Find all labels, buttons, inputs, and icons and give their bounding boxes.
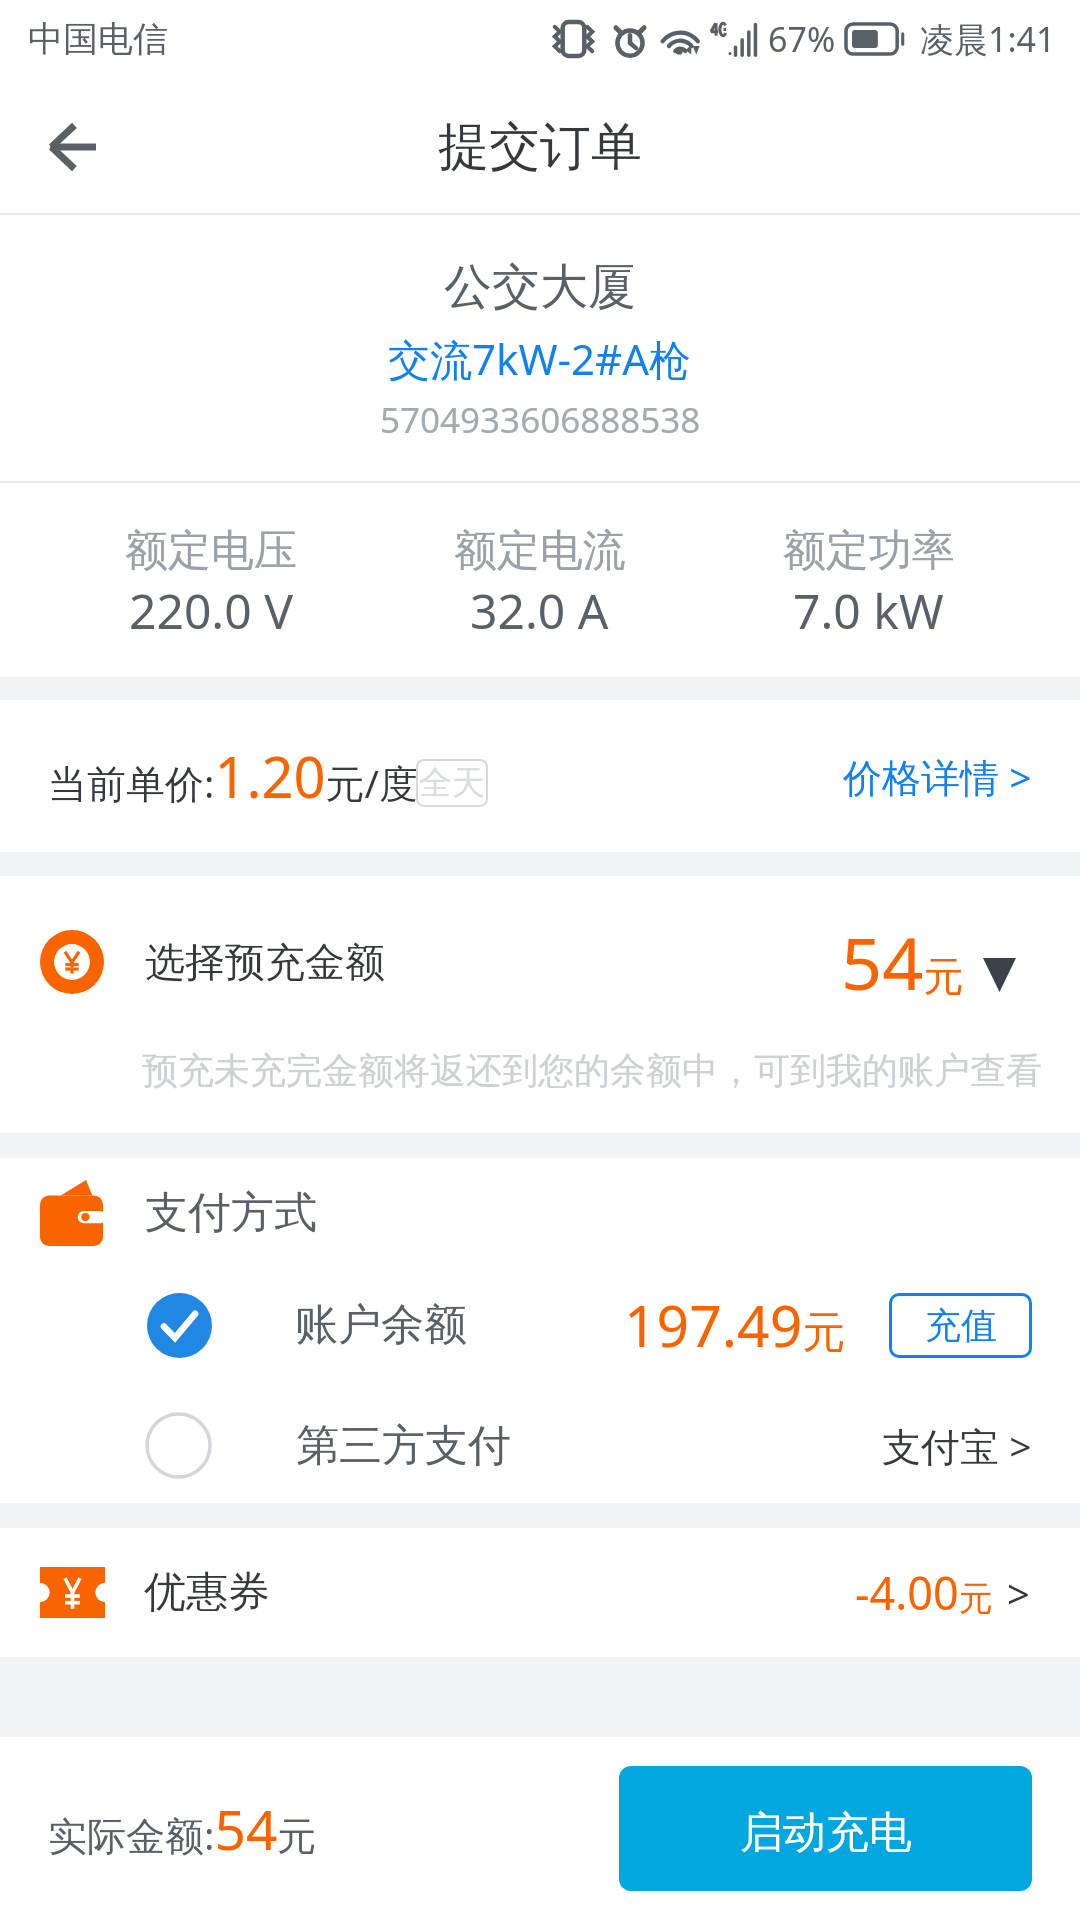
staticText: 当前单价:1.20元/度	[48, 738, 419, 814]
staticText: 账户余额	[295, 1298, 467, 1352]
staticText: 启动充电	[740, 1806, 912, 1860]
staticText: 实际金额:54元	[48, 1791, 317, 1866]
staticText: 预充未充完金额将返还到您的余额中，可到我的账户查看	[142, 1048, 1080, 1093]
staticText: 交流7kW-2#A枪	[388, 330, 692, 387]
staticText: -4.00元	[855, 1562, 993, 1623]
button[interactable]: 选择预充金额	[0, 876, 1080, 1048]
staticText: 价格详情 >	[843, 750, 1032, 803]
button[interactable]: 启动充电	[619, 1766, 1032, 1891]
staticText: >	[1007, 1566, 1030, 1620]
staticText: 67%	[768, 16, 836, 62]
staticText: 32.0 A	[470, 578, 609, 643]
button[interactable]: 充值	[889, 1293, 1032, 1358]
staticText: 额定电流	[454, 524, 626, 578]
staticText: 凌晨1:41	[920, 16, 1056, 62]
staticText: 197.49元	[624, 1286, 846, 1364]
staticText: 220.0 V	[129, 578, 293, 643]
button[interactable]: 优惠券	[0, 1528, 1080, 1657]
staticText: 公交大厦	[444, 257, 636, 317]
staticText: 充值	[925, 1303, 997, 1348]
staticText: 优惠券	[144, 1566, 270, 1619]
staticText: 支付方式	[145, 1186, 317, 1240]
button[interactable]: 当前单价:1.20元/度	[0, 700, 1080, 852]
button[interactable]: 价格详情 >	[843, 750, 1032, 803]
button[interactable]: 账户余额	[0, 1268, 1080, 1388]
staticText: 提交订单	[438, 115, 642, 179]
button[interactable]: 第三方支付	[0, 1388, 1080, 1503]
staticText: 额定电压	[125, 524, 297, 578]
button[interactable]: Back	[24, 99, 120, 195]
staticText: 5704933606888538	[380, 396, 701, 444]
staticText: 54元	[841, 913, 964, 1011]
staticText: 7.0 kW	[793, 578, 944, 643]
staticText: 支付宝 >	[882, 1419, 1032, 1472]
staticText: 第三方支付	[296, 1419, 511, 1473]
staticText: 中国电信	[28, 17, 168, 61]
staticText: 额定功率	[783, 524, 955, 578]
staticText: 全天	[419, 762, 485, 804]
staticText: 选择预充金额	[145, 937, 385, 987]
